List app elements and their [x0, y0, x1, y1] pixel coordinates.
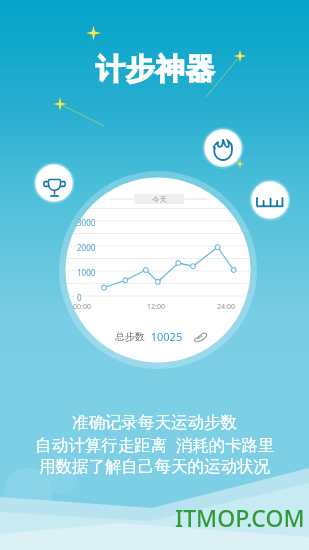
- staticText: 今天: [152, 195, 167, 204]
- button[interactable]: 今天: [134, 194, 184, 204]
- staticText: 12:00: [147, 302, 165, 312]
- staticText: 总步数: [115, 330, 145, 343]
- staticText: 自动计算行走距离 消耗的卡路里: [35, 433, 275, 456]
- staticText: 用数据了解自己每天的运动状况: [39, 456, 270, 477]
- staticText: 3000: [77, 217, 96, 228]
- staticText: ITMOP.COM: [175, 502, 305, 533]
- staticText: 准确记录每天运动步数: [72, 412, 237, 433]
- staticText: 1000: [77, 267, 96, 278]
- staticText: 10025: [145, 329, 183, 344]
- staticText: 0: [77, 292, 82, 303]
- button[interactable]: 总步数: [115, 329, 196, 344]
- button[interactable]: Achievements: [33, 162, 75, 204]
- staticText: 2000: [77, 242, 96, 253]
- staticText: 24:00: [217, 302, 235, 312]
- button[interactable]: Statistics: [249, 179, 291, 221]
- staticText: 00:00: [73, 302, 91, 312]
- button[interactable]: Calories: [202, 127, 244, 169]
- staticText: 计步神器: [95, 51, 215, 88]
